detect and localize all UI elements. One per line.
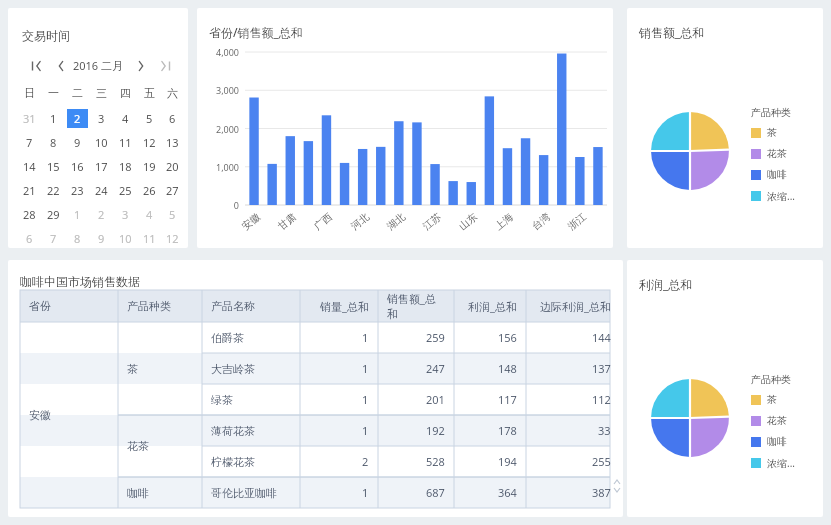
staticText: 259 xyxy=(426,330,445,345)
button[interactable]: 22 xyxy=(43,181,64,200)
staticText: 387 xyxy=(592,485,611,500)
button[interactable]: 销量_总和 xyxy=(300,290,378,322)
button[interactable]: 7 xyxy=(43,229,64,248)
button[interactable]: 12 xyxy=(139,133,160,152)
button[interactable]: 26 xyxy=(139,181,160,200)
button[interactable]: 浓缩... xyxy=(751,188,796,203)
staticText: 9 xyxy=(98,231,105,246)
staticText: 14 xyxy=(23,159,36,174)
button[interactable]: 茶 xyxy=(751,392,777,407)
button[interactable]: 2 xyxy=(91,205,112,224)
button[interactable]: 31 xyxy=(19,109,40,128)
button[interactable]: 10 xyxy=(91,133,112,152)
button[interactable]: 边际利润_总和 xyxy=(526,290,620,322)
button[interactable]: 24 xyxy=(91,181,112,200)
staticText: 6 xyxy=(26,231,33,246)
button[interactable]: 29 xyxy=(43,205,64,224)
button[interactable]: 3 xyxy=(115,205,136,224)
button[interactable]: 15 xyxy=(43,157,64,176)
button[interactable]: 7 xyxy=(19,133,40,152)
button[interactable]: 利润_总和 xyxy=(454,290,526,322)
button[interactable]: 6 xyxy=(19,229,40,248)
staticText: 31 xyxy=(23,111,36,126)
button[interactable]: 28 xyxy=(19,205,40,224)
staticText: 绿茶 xyxy=(211,393,233,407)
button[interactable]: 11 xyxy=(115,133,136,152)
button[interactable]: Previous month xyxy=(52,57,70,75)
staticText: 产品种类 xyxy=(127,299,171,313)
staticText: 四 xyxy=(120,86,131,100)
button[interactable]: 8 xyxy=(67,229,88,248)
button[interactable]: 21 xyxy=(19,181,40,200)
button[interactable]: 19 xyxy=(139,157,160,176)
staticText: 产品种类 xyxy=(751,373,791,386)
button[interactable]: 咖啡 xyxy=(751,434,787,449)
button[interactable]: 4 xyxy=(115,109,136,128)
button[interactable]: 6 xyxy=(162,109,183,128)
button[interactable]: 茶 xyxy=(751,125,777,140)
button[interactable]: Last month xyxy=(156,57,174,75)
button[interactable]: 12 xyxy=(162,229,183,248)
button[interactable]: 8 xyxy=(43,133,64,152)
button[interactable]: 9 xyxy=(67,133,88,152)
staticText: 2016 二月 xyxy=(70,58,126,73)
button[interactable]: 17 xyxy=(91,157,112,176)
button[interactable]: 14 xyxy=(19,157,40,176)
staticText: 8 xyxy=(74,231,81,246)
staticText: 边际利润_总和 xyxy=(540,299,611,314)
button[interactable]: 3 xyxy=(91,109,112,128)
staticText: 3 xyxy=(122,207,129,222)
staticText: 1 xyxy=(362,392,369,407)
button[interactable]: First month xyxy=(28,57,46,75)
button[interactable]: 10 xyxy=(115,229,136,248)
button[interactable]: 23 xyxy=(67,181,88,200)
staticText: 4 xyxy=(146,207,153,222)
button[interactable]: 13 xyxy=(162,133,183,152)
button[interactable]: Next month xyxy=(132,57,150,75)
button[interactable]: 浓缩... xyxy=(751,455,796,470)
button[interactable]: 18 xyxy=(115,157,136,176)
staticText: 148 xyxy=(498,361,517,376)
button[interactable]: 25 xyxy=(115,181,136,200)
staticText: 25 xyxy=(119,183,132,198)
button[interactable]: 20 xyxy=(162,157,183,176)
staticText: 178 xyxy=(498,423,517,438)
button[interactable]: 花茶 xyxy=(751,146,787,161)
staticText: 浓缩... xyxy=(767,456,796,470)
button[interactable]: 省份 xyxy=(20,290,118,322)
staticText: 21 xyxy=(23,183,36,198)
staticText: 1 xyxy=(362,361,369,376)
button[interactable]: Scroll xyxy=(612,475,622,497)
staticText: 伯爵茶 xyxy=(211,331,244,345)
button[interactable]: 产品名称 xyxy=(202,290,300,322)
staticText: 茶 xyxy=(767,393,777,406)
staticText: 花茶 xyxy=(767,147,787,160)
button[interactable]: 产品种类 xyxy=(118,290,202,322)
button[interactable]: 1 xyxy=(43,109,64,128)
button[interactable]: 5 xyxy=(139,109,160,128)
button[interactable]: 1 xyxy=(67,205,88,224)
staticText: 六 xyxy=(167,86,178,100)
staticText: 江苏 xyxy=(420,210,444,233)
staticText: 247 xyxy=(426,361,445,376)
staticText: 17 xyxy=(95,159,108,174)
button[interactable]: 花茶 xyxy=(751,413,787,428)
staticText: 28 xyxy=(23,207,36,222)
staticText: 255 xyxy=(592,454,611,469)
staticText: 安徽 xyxy=(29,408,51,422)
button[interactable]: 11 xyxy=(139,229,160,248)
button[interactable]: 27 xyxy=(162,181,183,200)
staticText: 1 xyxy=(362,330,369,345)
button[interactable]: 销售额_总和 xyxy=(378,290,454,322)
staticText: 广西 xyxy=(311,210,335,233)
staticText: 192 xyxy=(426,423,445,438)
button[interactable]: 9 xyxy=(91,229,112,248)
staticText: 0 xyxy=(199,199,239,211)
button[interactable]: 2 xyxy=(67,109,88,128)
staticText: 咖啡中国市场销售数据 xyxy=(20,274,140,289)
button[interactable]: 5 xyxy=(162,205,183,224)
button[interactable]: 4 xyxy=(139,205,160,224)
staticText: 7 xyxy=(50,231,57,246)
button[interactable]: 16 xyxy=(67,157,88,176)
button[interactable]: 咖啡 xyxy=(751,167,787,182)
